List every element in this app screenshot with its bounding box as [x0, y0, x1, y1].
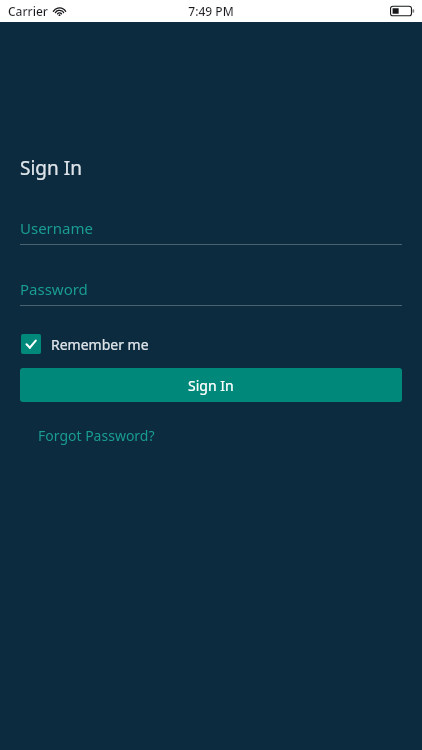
staticText: Remember me — [51, 335, 149, 354]
button[interactable]: Sign In — [20, 368, 402, 402]
staticText: Username — [20, 218, 93, 238]
button[interactable]: Forgot Password? — [38, 426, 155, 445]
staticText: Sign In — [20, 155, 82, 181]
button[interactable]: Username — [20, 218, 402, 245]
other: Battery level — [390, 5, 415, 17]
staticText: Forgot Password? — [38, 426, 155, 445]
staticText: 7:49 PM — [188, 3, 234, 19]
other: Wi-Fi signal — [53, 5, 66, 18]
staticText: Carrier — [8, 3, 48, 19]
staticText: Sign In — [188, 376, 234, 395]
button[interactable]: Remember me — [21, 334, 149, 354]
staticText: Password — [20, 279, 88, 299]
button[interactable]: Password — [20, 279, 402, 306]
